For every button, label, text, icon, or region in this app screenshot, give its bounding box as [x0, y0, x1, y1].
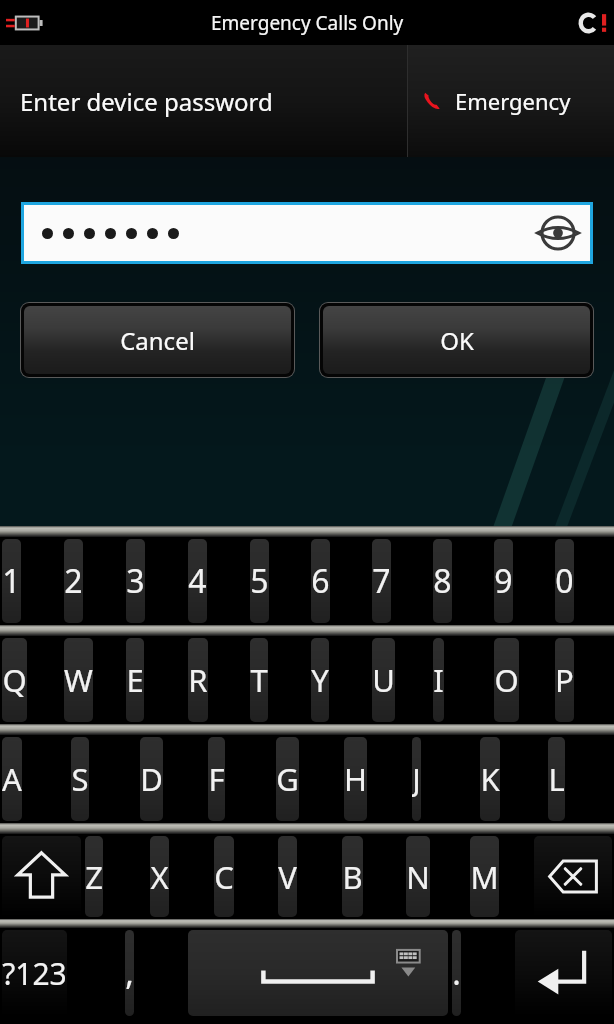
- staticText: Z: [85, 856, 103, 898]
- button[interactable]: Emergency: [407, 45, 614, 157]
- staticText: 6: [311, 559, 330, 603]
- button[interactable]: U: [372, 638, 395, 722]
- button[interactable]: P: [555, 638, 574, 722]
- button[interactable]: 8: [433, 539, 452, 623]
- staticText: A: [2, 758, 22, 800]
- staticText: S: [71, 758, 89, 800]
- staticText: OK: [440, 324, 474, 357]
- staticText: F: [208, 758, 225, 800]
- button[interactable]: E: [126, 638, 144, 722]
- button[interactable]: ,: [125, 930, 134, 1016]
- staticText: 4: [188, 559, 207, 603]
- button[interactable]: M: [470, 836, 499, 917]
- button[interactable]: T: [250, 638, 268, 722]
- button[interactable]: G: [276, 737, 299, 821]
- staticText: 5: [250, 559, 269, 603]
- button[interactable]: S: [71, 737, 89, 821]
- button[interactable]: 1: [2, 539, 21, 623]
- button[interactable]: 2: [64, 539, 83, 623]
- staticText: P: [555, 659, 574, 701]
- button[interactable]: ?123: [2, 930, 67, 1016]
- staticText: R: [188, 659, 208, 701]
- button[interactable]: Q: [2, 638, 27, 722]
- button[interactable]: Show password: [540, 215, 576, 251]
- staticText: Y: [311, 659, 329, 701]
- button[interactable]: 4: [188, 539, 207, 623]
- staticText: N: [406, 856, 430, 898]
- button[interactable]: W: [64, 638, 93, 722]
- button[interactable]: 3: [126, 539, 145, 623]
- staticText: L: [548, 758, 565, 800]
- button[interactable]: V: [278, 836, 297, 917]
- staticText: E: [126, 659, 144, 701]
- staticText: T: [250, 659, 268, 701]
- button[interactable]: I: [433, 638, 444, 722]
- button[interactable]: Y: [311, 638, 329, 722]
- button[interactable]: 6: [311, 539, 330, 623]
- button[interactable]: Shift: [2, 836, 81, 917]
- button[interactable]: N: [406, 836, 430, 917]
- staticText: 8: [433, 559, 452, 603]
- staticText: 2: [64, 559, 83, 603]
- staticText: B: [342, 856, 363, 898]
- button[interactable]: Backspace: [534, 836, 612, 917]
- button[interactable]: H: [344, 737, 367, 821]
- staticText: M: [470, 856, 499, 898]
- staticText: U: [372, 659, 395, 701]
- button[interactable]: R: [188, 638, 208, 722]
- button[interactable]: K: [480, 737, 500, 821]
- button[interactable]: OK: [323, 306, 590, 374]
- button[interactable]: B: [342, 836, 363, 917]
- button[interactable]: 7: [372, 539, 391, 623]
- button[interactable]: X: [150, 836, 169, 917]
- staticText: C: [214, 856, 234, 898]
- staticText: H: [344, 758, 367, 800]
- button[interactable]: 5: [250, 539, 269, 623]
- staticText: 7: [372, 559, 391, 603]
- button[interactable]: A: [2, 737, 22, 821]
- staticText: I: [433, 659, 444, 701]
- button[interactable]: Cancel: [24, 306, 291, 374]
- button[interactable]: F: [208, 737, 225, 821]
- staticText: ?123: [2, 953, 67, 994]
- staticText: Q: [2, 659, 27, 701]
- button[interactable]: 9: [494, 539, 513, 623]
- button[interactable]: .: [452, 930, 461, 1016]
- staticText: Emergency: [455, 86, 571, 116]
- button[interactable]: C: [214, 836, 234, 917]
- button[interactable]: J: [412, 737, 421, 821]
- staticText: D: [140, 758, 163, 800]
- button[interactable]: Z: [85, 836, 103, 917]
- staticText: Emergency Calls Only: [211, 10, 404, 36]
- staticText: 9: [494, 559, 513, 603]
- staticText: 0: [555, 559, 574, 603]
- button[interactable]: Space: [188, 930, 448, 1016]
- staticText: .: [452, 951, 461, 995]
- button[interactable]: 0: [555, 539, 574, 623]
- staticText: 1: [2, 559, 21, 603]
- staticText: Enter device password: [20, 85, 273, 118]
- button[interactable]: L: [548, 737, 565, 821]
- button[interactable]: O: [494, 638, 519, 722]
- staticText: W: [64, 659, 93, 701]
- staticText: O: [494, 659, 519, 701]
- button[interactable]: Show password: [24, 205, 590, 261]
- staticText: J: [412, 758, 421, 800]
- staticText: Cancel: [120, 324, 195, 357]
- staticText: K: [480, 758, 500, 800]
- button[interactable]: D: [140, 737, 163, 821]
- staticText: ,: [125, 951, 134, 995]
- staticText: X: [150, 856, 169, 898]
- button[interactable]: Enter: [515, 930, 612, 1016]
- staticText: V: [278, 856, 297, 898]
- staticText: G: [276, 758, 299, 800]
- staticText: 3: [126, 559, 145, 603]
